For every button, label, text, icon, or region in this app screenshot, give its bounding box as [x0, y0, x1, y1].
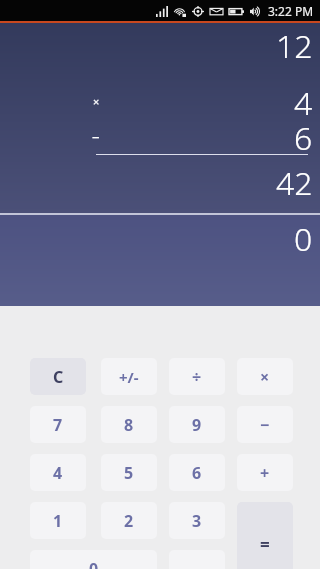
staticText: ÷ [192, 366, 202, 388]
button[interactable]: C [30, 358, 86, 395]
staticText: 12 [276, 24, 313, 68]
staticText: 3:22 PM [268, 3, 314, 19]
button[interactable]: 3 [169, 502, 225, 539]
staticText: 0 [294, 217, 313, 261]
staticText: 2 [124, 510, 134, 532]
staticText: 3 [192, 510, 202, 532]
staticText: – [92, 126, 100, 146]
staticText: × [93, 94, 100, 109]
button[interactable]: − [237, 406, 293, 443]
staticText: − [260, 414, 270, 436]
staticText: 1 [53, 510, 63, 532]
staticText: 4 [294, 81, 313, 125]
button[interactable]: 4 [30, 454, 86, 491]
staticText: 0 [89, 558, 99, 569]
staticText: 6 [294, 116, 313, 160]
staticText: 4 [53, 462, 63, 484]
staticText: 7 [53, 414, 63, 436]
staticText: = [260, 533, 270, 556]
button[interactable]: 5 [101, 454, 157, 491]
button[interactable]: 7 [30, 406, 86, 443]
staticText: C [53, 366, 64, 388]
button[interactable]: ÷ [169, 358, 225, 395]
button[interactable]: 1 [30, 502, 86, 539]
staticText: 8 [124, 414, 134, 436]
staticText: 42 [276, 161, 313, 205]
staticText: 5 [124, 462, 134, 484]
button[interactable]: = [237, 502, 293, 569]
button[interactable]: +/- [101, 358, 157, 395]
button[interactable]: + [237, 454, 293, 491]
staticText: 9 [192, 414, 202, 436]
button[interactable]: 0 [30, 550, 157, 569]
button[interactable]: 2 [101, 502, 157, 539]
staticText: +/- [119, 367, 139, 387]
button[interactable]: 6 [169, 454, 225, 491]
button[interactable]: × [237, 358, 293, 395]
staticText: + [260, 462, 270, 484]
staticText: × [260, 366, 270, 388]
staticText: 6 [192, 462, 202, 484]
button[interactable]: 9 [169, 406, 225, 443]
button[interactable]: 8 [101, 406, 157, 443]
